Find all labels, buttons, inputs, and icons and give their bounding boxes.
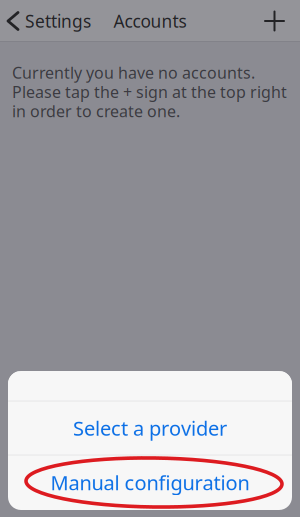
- staticText: in order to create one.: [12, 100, 180, 122]
- button[interactable]: Add account: [252, 1, 300, 40]
- button[interactable]: Settings: [0, 1, 99, 40]
- button[interactable]: Manual configuration: [8, 455, 292, 509]
- staticText: Select a provider: [73, 415, 227, 441]
- staticText: Accounts: [113, 9, 186, 32]
- button[interactable]: Select a provider: [8, 401, 292, 454]
- staticText: Please tap the + sign at the top right: [12, 81, 287, 102]
- staticText: Settings: [25, 9, 91, 32]
- staticText: Currently you have no accounts.: [12, 62, 255, 83]
- staticText: Manual configuration: [50, 469, 249, 496]
